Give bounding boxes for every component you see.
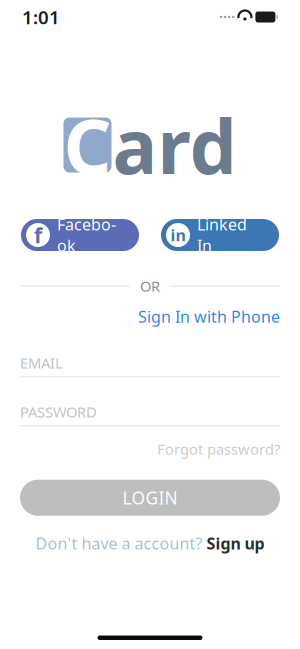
staticText: 1:01 bbox=[22, 5, 60, 29]
staticText: f bbox=[34, 221, 42, 249]
staticText: Linked In bbox=[197, 214, 247, 256]
staticText: LOGIN bbox=[122, 486, 177, 509]
button[interactable]: Don't have a account? bbox=[35, 530, 264, 557]
button[interactable]: Forgot password? bbox=[157, 437, 280, 461]
button[interactable]: f bbox=[21, 219, 139, 251]
staticText: Forgot password? bbox=[157, 439, 280, 459]
staticText: Don't have a account? bbox=[35, 533, 202, 554]
staticText: Sign up bbox=[206, 533, 264, 554]
staticText: in bbox=[170, 224, 185, 246]
staticText: PASSWORD bbox=[20, 402, 97, 421]
button[interactable]: Sign In with Phone bbox=[138, 303, 280, 330]
staticText: OR bbox=[140, 276, 160, 296]
button[interactable]: LOGIN bbox=[20, 480, 280, 516]
staticText: Sign In with Phone bbox=[138, 306, 280, 327]
button[interactable]: in bbox=[161, 219, 279, 251]
staticText: C bbox=[63, 95, 111, 195]
staticText: ard bbox=[112, 95, 236, 195]
staticText: EMAIL bbox=[20, 353, 63, 372]
staticText: Facebook bbox=[57, 214, 116, 256]
